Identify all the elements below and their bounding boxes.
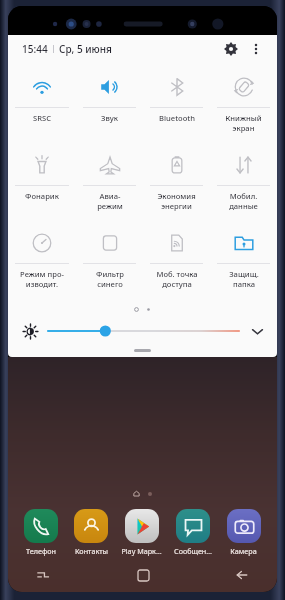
staticText: Фильтр синего	[96, 269, 124, 289]
button[interactable]: Телефон	[16, 509, 66, 556]
staticText: Авиа- режим	[97, 191, 123, 211]
staticText: 15:44	[22, 42, 48, 56]
button[interactable]: Brightness	[20, 321, 40, 341]
staticText: Камера	[230, 546, 257, 556]
staticText: Моб. точка доступа	[156, 269, 198, 289]
staticText: Защищ. папка	[229, 269, 259, 289]
button[interactable]: Expand	[247, 321, 267, 341]
button[interactable]: Звук	[76, 67, 143, 145]
button[interactable]: Защищ. папка	[210, 223, 277, 301]
button[interactable]: Сообщен…	[167, 509, 218, 556]
staticText: Мобил. данные	[229, 191, 258, 211]
button[interactable]: SRSC	[8, 67, 76, 145]
button[interactable]: Settings	[219, 37, 243, 61]
staticText: Телефон	[26, 546, 56, 556]
button[interactable]: Книжный экран	[210, 67, 277, 145]
staticText: Режим про- изводит.	[20, 269, 64, 289]
staticText: Bluetooth	[159, 113, 195, 123]
button[interactable]: Back	[229, 562, 255, 588]
button[interactable]: Моб. точка доступа	[143, 223, 210, 301]
staticText: Ср, 5 июня	[59, 42, 112, 56]
button[interactable]: Recent apps	[30, 562, 56, 588]
button[interactable]: Мобил. данные	[210, 145, 277, 223]
button[interactable]: Режим про- изводит.	[8, 223, 76, 301]
button[interactable]: Play Марк…	[116, 509, 167, 556]
button[interactable]: Фонарик	[8, 145, 76, 223]
button[interactable]	[48, 322, 239, 340]
staticText: Фонарик	[25, 191, 59, 201]
button[interactable]: More options	[245, 38, 267, 60]
button[interactable]: Контакты	[66, 509, 116, 556]
staticText: SRSC	[33, 113, 51, 123]
staticText: Экономия энергии	[157, 191, 196, 211]
button[interactable]: Экономия энергии	[143, 145, 210, 223]
button[interactable]: Bluetooth	[143, 67, 210, 145]
staticText: Книжный экран	[225, 113, 262, 133]
staticText: Play Марк…	[121, 546, 162, 556]
button[interactable]: Home	[130, 562, 156, 588]
button[interactable]: Фильтр синего	[76, 223, 143, 301]
staticText: Звук	[101, 113, 118, 123]
button[interactable]: Камера	[218, 509, 269, 556]
button[interactable]: Авиа- режим	[76, 145, 143, 223]
staticText: Сообщен…	[174, 546, 212, 556]
staticText: Контакты	[75, 546, 108, 556]
